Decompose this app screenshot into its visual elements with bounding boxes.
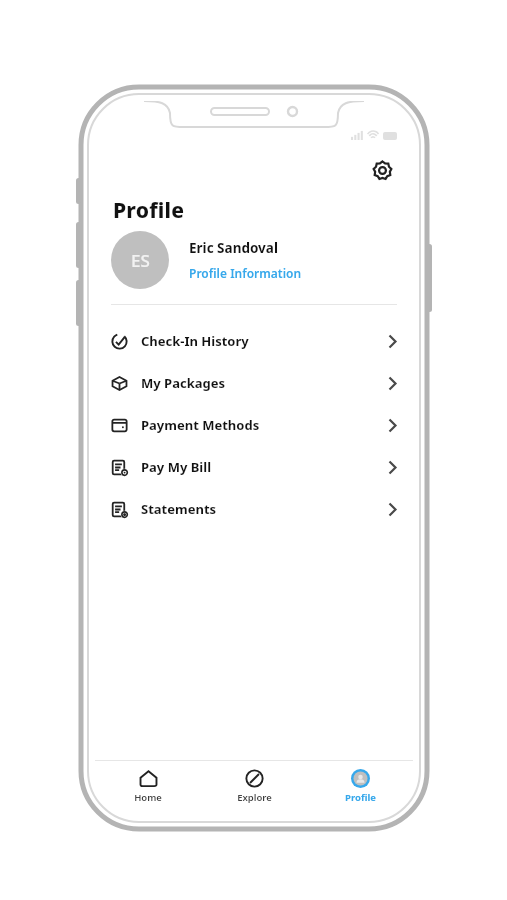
staticText: Profile: [113, 196, 185, 225]
button[interactable]: ES: [111, 231, 397, 289]
button[interactable]: Profile Information: [189, 265, 302, 281]
staticText: Explore: [237, 791, 272, 804]
staticText: Home: [134, 791, 162, 804]
button[interactable]: Pay My Bill: [95, 446, 413, 488]
button[interactable]: Payment Methods: [95, 404, 413, 446]
staticText: Eric Sandoval: [189, 239, 278, 257]
button[interactable]: My Packages: [95, 362, 413, 404]
button[interactable]: Profile: [307, 761, 413, 804]
staticText: Pay My Bill: [141, 458, 388, 476]
button[interactable]: Home: [95, 761, 201, 804]
staticText: Check-In History: [141, 332, 388, 350]
staticText: Payment Methods: [141, 416, 388, 434]
button[interactable]: Statements: [95, 488, 413, 530]
button[interactable]: Check-In History: [95, 320, 413, 362]
staticText: ES: [131, 249, 150, 272]
button[interactable]: Settings: [365, 153, 399, 187]
button[interactable]: Explore: [201, 761, 307, 804]
staticText: My Packages: [141, 374, 388, 392]
staticText: Profile: [345, 791, 376, 804]
staticText: Statements: [141, 500, 388, 518]
